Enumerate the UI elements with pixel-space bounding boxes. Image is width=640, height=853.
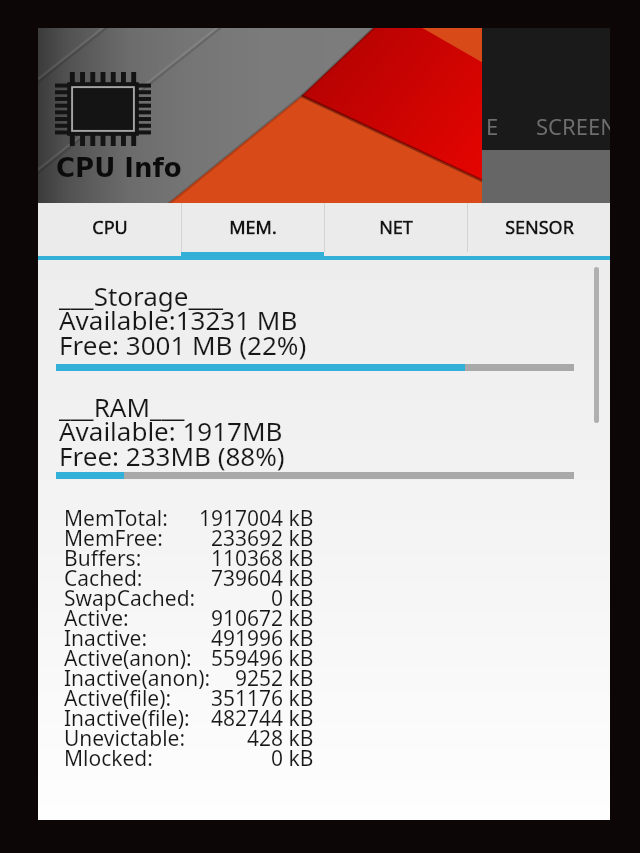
- staticText: CPU Info: [56, 153, 182, 183]
- staticText: 110368 kB: [211, 544, 314, 573]
- staticText: 1917004 kB: [199, 504, 314, 533]
- staticText: NET: [379, 215, 413, 240]
- staticText: 233692 kB: [211, 524, 314, 553]
- staticText: ___Storage___: [59, 278, 224, 313]
- staticText: CPU: [92, 215, 128, 240]
- staticText: MEM.: [229, 215, 277, 240]
- staticText: Inactive(file):: [64, 704, 190, 733]
- button[interactable]: NET: [325, 203, 467, 252]
- staticText: 739604 kB: [211, 564, 314, 593]
- staticText: 482744 kB: [211, 704, 314, 733]
- staticText: 910672 kB: [211, 604, 314, 633]
- staticText: E: [486, 111, 499, 141]
- staticText: 0 kB: [271, 744, 314, 773]
- staticText: SENSOR: [505, 215, 574, 240]
- staticText: MemFree:: [64, 524, 163, 553]
- staticText: Unevictable:: [64, 724, 186, 753]
- staticText: Buffers:: [64, 544, 142, 573]
- staticText: 351176 kB: [211, 684, 314, 713]
- staticText: Active:: [64, 604, 129, 633]
- button[interactable]: SENSOR: [468, 203, 610, 252]
- staticText: 491996 kB: [211, 624, 314, 653]
- staticText: Available:13231 MB: [59, 302, 298, 337]
- button[interactable]: CPU: [38, 203, 181, 252]
- staticText: MemTotal:: [64, 504, 168, 533]
- staticText: Inactive:: [64, 624, 148, 653]
- staticText: 559496 kB: [211, 644, 314, 673]
- staticText: Mlocked:: [64, 744, 153, 773]
- staticText: ___RAM___: [59, 389, 185, 424]
- staticText: 428 kB: [247, 724, 314, 753]
- button[interactable]: MEM.: [182, 203, 324, 252]
- staticText: Free: 233MB (88%): [59, 438, 285, 473]
- staticText: 9252 kB: [235, 664, 314, 693]
- staticText: SwapCached:: [64, 584, 196, 613]
- staticText: SCREEN: [536, 111, 610, 141]
- staticText: Free: 3001 MB (22%): [59, 327, 307, 362]
- staticText: Inactive(anon):: [64, 664, 211, 693]
- staticText: 0 kB: [271, 584, 314, 613]
- staticText: Available: 1917MB: [59, 413, 283, 448]
- staticText: Cached:: [64, 564, 143, 593]
- staticText: Active(file):: [64, 684, 172, 713]
- staticText: Active(anon):: [64, 644, 192, 673]
